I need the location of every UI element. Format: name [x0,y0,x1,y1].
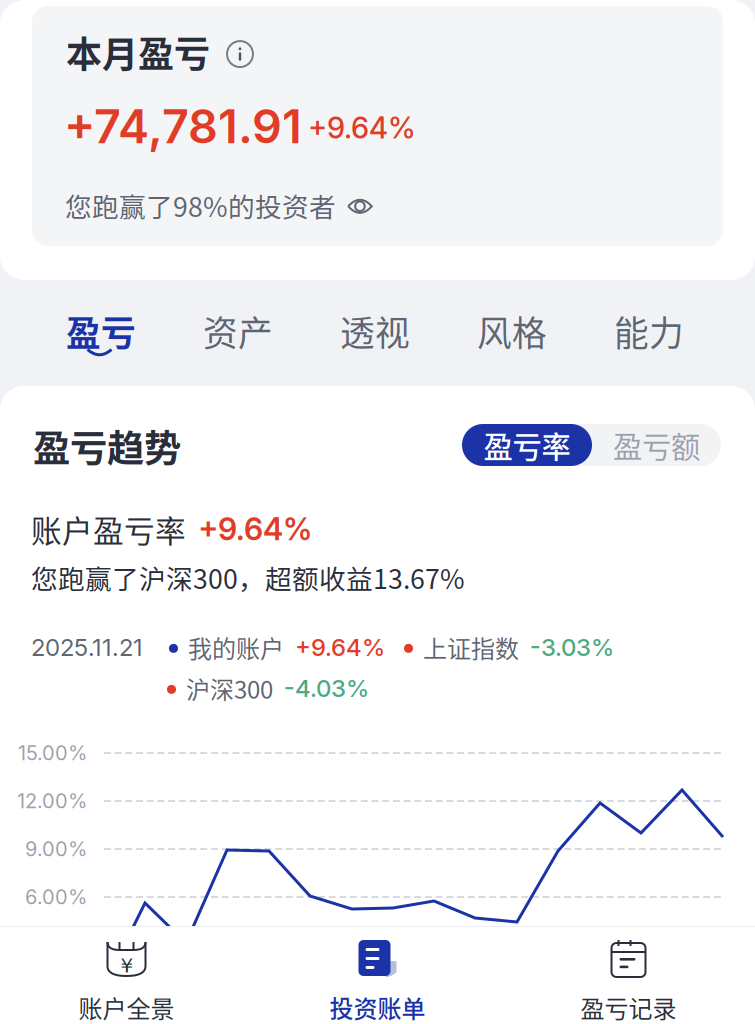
staticText: 盈亏额 [613,424,700,466]
staticText: +9.64% [198,511,312,548]
button[interactable]: 风格 [477,280,614,386]
button[interactable]: 投资账单 [252,926,503,1024]
staticText: 盈亏趋势 [33,419,181,473]
staticText: 我的账户 [188,630,284,665]
staticText: 本月盈亏 [66,26,210,78]
staticText: 盈亏 [66,306,136,356]
staticText: 账户全景 [78,990,174,1024]
button[interactable]: 盈亏 [66,280,203,386]
staticText: -3.03% [530,633,614,662]
staticText: 您跑赢了沪深300，超额收益13.67% [31,558,465,597]
staticText: +9.64% [295,633,385,662]
staticText: 6.00% [25,885,87,909]
staticText: 12.00% [17,789,87,813]
staticText: 资产 [203,306,273,356]
staticText: 沪深300 [186,671,273,706]
button[interactable]: 透视 [340,280,477,386]
staticText: -4.03% [284,674,369,703]
button[interactable]: 盈亏额 [592,424,721,466]
button[interactable]: 能力 [614,280,751,386]
staticText: 盈亏率 [483,424,570,466]
staticText: 15.00% [18,741,87,765]
staticText: 透视 [340,306,410,356]
staticText: 2025.11.21 [31,633,143,662]
button[interactable]: 盈亏率 [462,424,592,466]
staticText: 9.00% [25,837,87,861]
staticText: ¥ [120,954,133,977]
staticText: 能力 [614,306,684,356]
staticText: 账户盈亏率 [31,507,186,551]
button[interactable]: ¥ [1,926,252,1024]
staticText: 盈亏记录 [580,990,676,1024]
button[interactable]: 资产 [203,280,340,386]
staticText: 您跑赢了98%的投资者 [65,186,336,225]
staticText: 投资账单 [329,990,425,1024]
staticText: 风格 [477,306,547,356]
staticText: +9.64% [308,110,416,145]
button[interactable]: 盈亏记录 [503,926,754,1024]
staticText: 上证指数 [423,630,519,665]
staticText: +74,781.91 [64,98,302,154]
